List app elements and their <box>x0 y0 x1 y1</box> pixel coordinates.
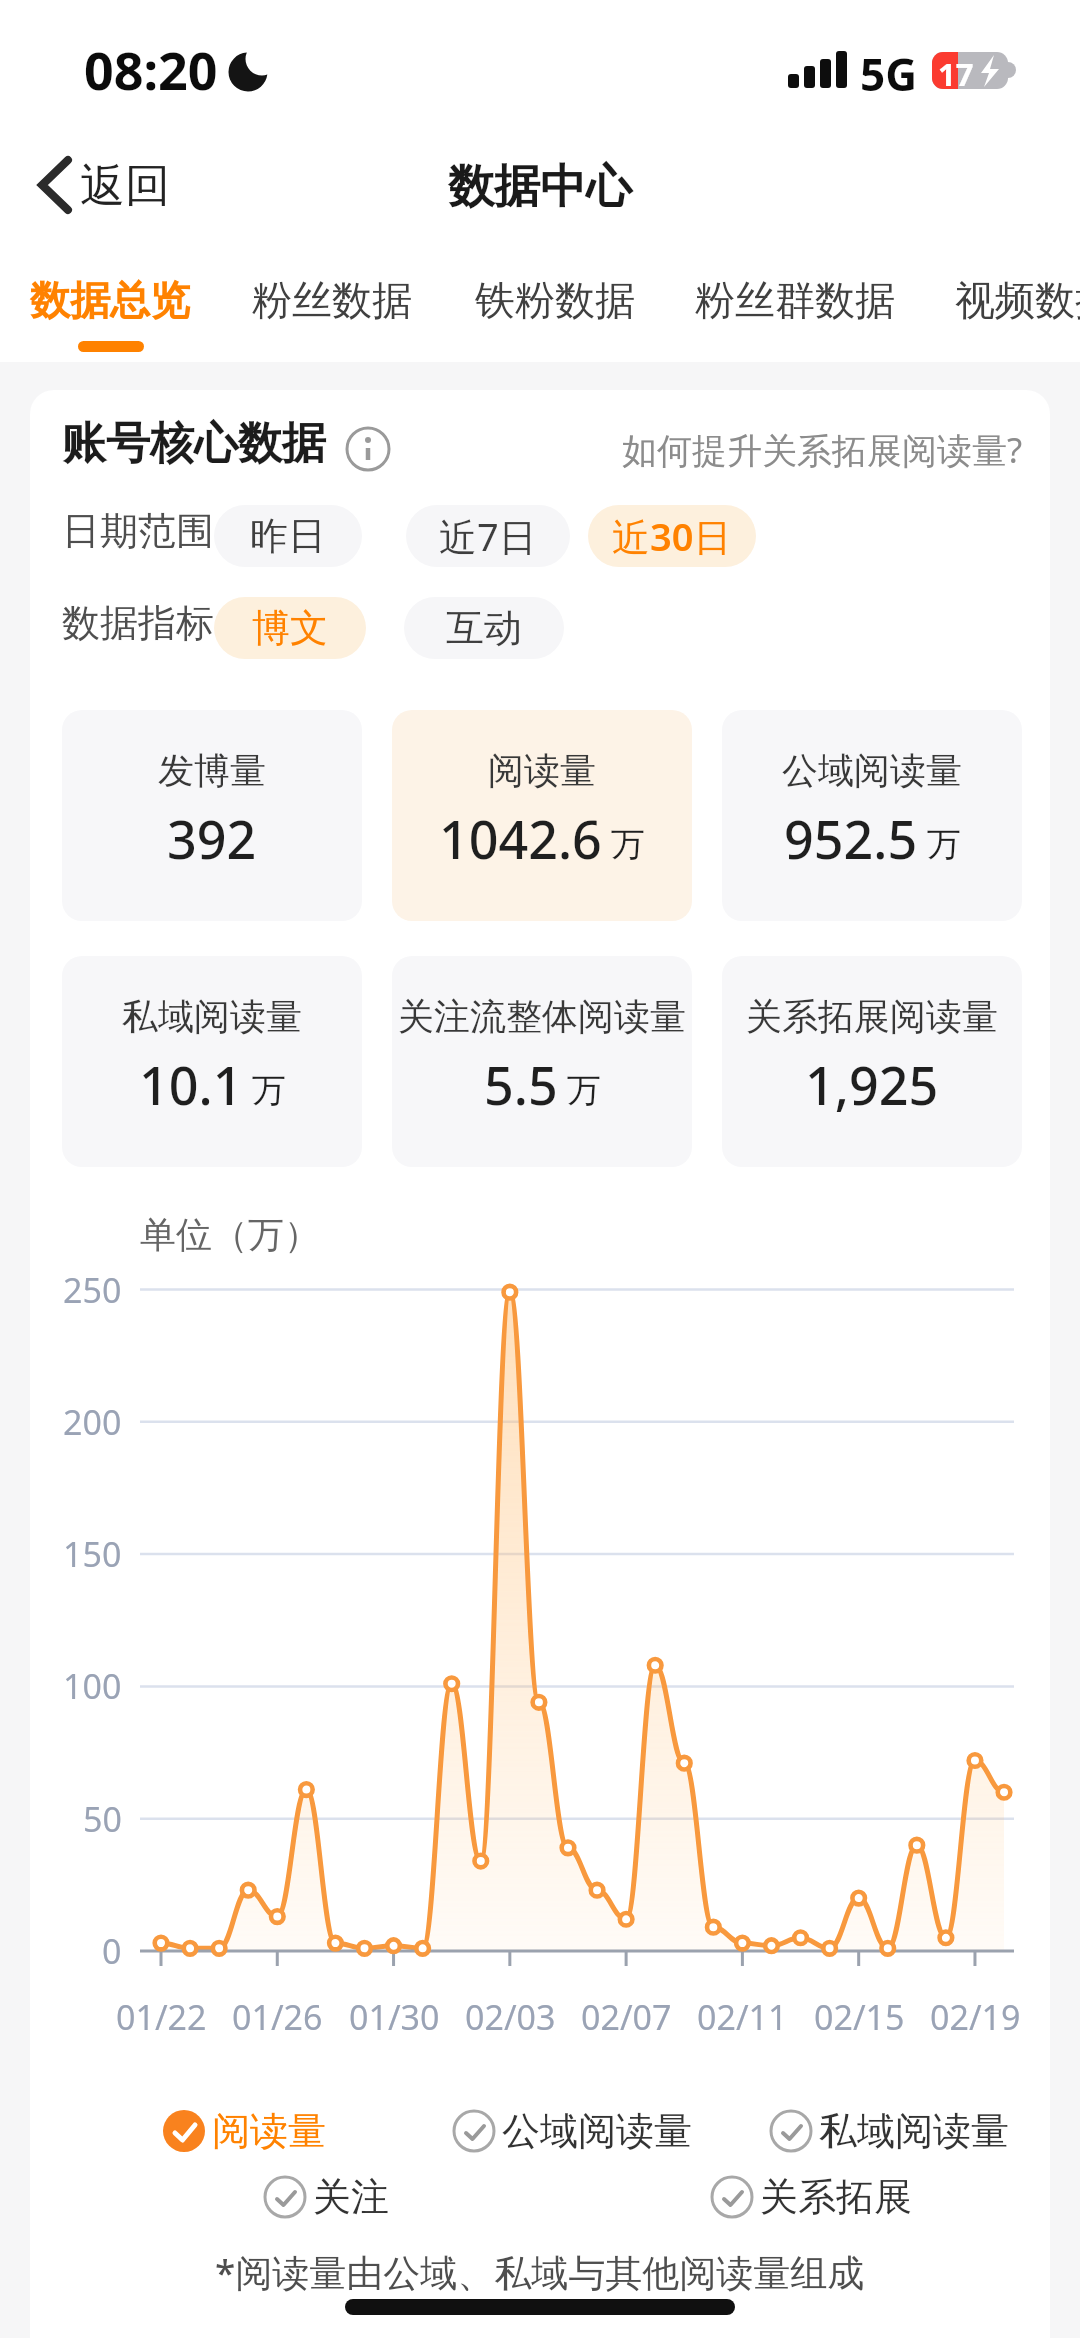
staticText: 392 <box>167 803 257 874</box>
staticText: 阅读量 <box>488 748 596 793</box>
button[interactable]: 数据总览 <box>30 267 190 347</box>
button[interactable]: 粉丝群数据 <box>695 267 895 347</box>
staticText: 万 <box>243 1066 286 1112</box>
staticText: 08:20 <box>84 34 218 105</box>
staticText: 单位（万） <box>140 1212 320 1257</box>
staticText: 粉丝群数据 <box>695 275 895 325</box>
button[interactable]: 视频数据 <box>955 267 1080 347</box>
button[interactable]: 如何提升关系拓展阅读量? <box>622 426 1023 474</box>
staticText: 万 <box>602 820 645 866</box>
staticText: 日期范围 <box>62 507 214 555</box>
staticText: 铁粉数据 <box>475 275 635 325</box>
staticText: *阅读量由公域、私域与其他阅读量组成 <box>215 2246 865 2297</box>
staticText: 账号核心数据 <box>62 416 326 471</box>
button[interactable]: 关系拓展 <box>710 2173 912 2221</box>
staticText: 关注 <box>313 2173 389 2221</box>
staticText: 公域阅读量 <box>782 748 962 793</box>
staticText: 博文 <box>252 604 328 652</box>
button[interactable]: 私域阅读量 <box>769 2107 1009 2155</box>
staticText: 1,925 <box>805 1049 939 1120</box>
staticText: 02/07 <box>581 1994 672 2040</box>
staticText: 1042.6 <box>439 803 602 874</box>
staticText: 公域阅读量 <box>502 2107 692 2155</box>
button[interactable]: 昨日 <box>214 505 362 567</box>
staticText: 视频数据 <box>955 275 1080 325</box>
staticText: 关系拓展阅读量 <box>746 994 998 1039</box>
staticText: 02/11 <box>697 1994 788 2040</box>
staticText: 01/30 <box>349 1994 440 2040</box>
button[interactable]: 互动 <box>404 597 564 659</box>
button[interactable]: 返回 <box>30 145 190 225</box>
staticText: 150 <box>63 1531 122 1577</box>
staticText: 02/03 <box>465 1994 556 2040</box>
staticText: 5.5 <box>484 1049 558 1120</box>
staticText: 952.5 <box>784 803 918 874</box>
staticText: 01/26 <box>232 1994 323 2040</box>
button[interactable] <box>345 426 391 472</box>
button[interactable]: 关注流整体阅读量 <box>392 956 692 1167</box>
staticText: 关系拓展 <box>760 2173 912 2221</box>
staticText: 01/22 <box>116 1994 207 2040</box>
staticText: 100 <box>63 1663 122 1709</box>
staticText: 数据中心 <box>448 158 632 216</box>
button[interactable]: 公域阅读量 <box>452 2107 692 2155</box>
staticText: 粉丝数据 <box>252 275 412 325</box>
staticText: 私域阅读量 <box>122 994 302 1039</box>
staticText: 万 <box>558 1066 601 1112</box>
staticText: 近7日 <box>439 510 537 562</box>
staticText: 万 <box>918 820 961 866</box>
button[interactable]: 公域阅读量 <box>722 710 1022 921</box>
staticText: 私域阅读量 <box>819 2107 1009 2155</box>
staticText: 02/15 <box>814 1994 905 2040</box>
staticText: 发博量 <box>158 748 266 793</box>
staticText: 阅读量 <box>212 2107 326 2155</box>
button[interactable]: 近7日 <box>406 505 570 567</box>
staticText: 关注流整体阅读量 <box>398 994 686 1039</box>
button[interactable]: 关系拓展阅读量 <box>722 956 1022 1167</box>
button[interactable]: 博文 <box>214 597 366 659</box>
staticText: 近30日 <box>612 510 732 562</box>
staticText: 200 <box>63 1399 122 1445</box>
button[interactable]: 粉丝数据 <box>252 267 412 347</box>
staticText: 10.1 <box>139 1049 243 1120</box>
staticText: 250 <box>63 1267 122 1313</box>
button[interactable]: 阅读量 <box>162 2107 326 2155</box>
button[interactable]: 关注 <box>263 2173 389 2221</box>
staticText: 02/19 <box>930 1994 1021 2040</box>
button[interactable]: 私域阅读量 <box>62 956 362 1167</box>
staticText: 50 <box>83 1796 122 1842</box>
staticText: 17 <box>938 53 974 95</box>
button[interactable]: 发博量 <box>62 710 362 921</box>
staticText: 数据总览 <box>30 275 190 325</box>
staticText: 5G <box>860 44 918 104</box>
staticText: 数据指标 <box>62 599 214 647</box>
button[interactable]: 阅读量 <box>392 710 692 921</box>
staticText: 昨日 <box>250 512 326 560</box>
staticText: 0 <box>102 1928 122 1974</box>
button[interactable]: 铁粉数据 <box>475 267 635 347</box>
staticText: 返回 <box>80 158 170 215</box>
button[interactable]: 近30日 <box>588 505 756 567</box>
staticText: 互动 <box>446 604 522 652</box>
